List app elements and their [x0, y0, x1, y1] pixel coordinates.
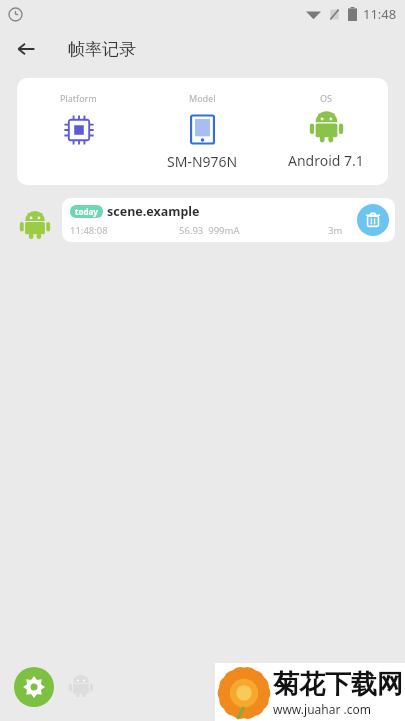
- button[interactable]: today: [62, 198, 395, 242]
- staticText: SM-N976N: [167, 152, 238, 171]
- staticText: today: [75, 206, 98, 217]
- button[interactable]: Delete: [357, 204, 389, 236]
- button[interactable]: Platform: [17, 78, 388, 185]
- staticText: 3m: [328, 224, 343, 237]
- staticText: 11:48: [363, 5, 397, 23]
- button[interactable]: Android app: [63, 669, 99, 705]
- staticText: 11:48:08: [70, 224, 108, 237]
- staticText: OS: [320, 92, 332, 104]
- staticText: Platform: [60, 92, 97, 104]
- staticText: Model: [189, 92, 216, 104]
- staticText: scene.example: [107, 203, 200, 220]
- staticText: 菊花下载网: [273, 668, 403, 701]
- button[interactable]: Back: [8, 31, 44, 67]
- button[interactable]: Settings: [14, 667, 54, 707]
- staticText: Android 7.1: [288, 151, 364, 170]
- staticText: www.juahar .com: [273, 701, 371, 717]
- staticText: 56.93 999mA: [179, 224, 240, 237]
- staticText: 帧率记录: [68, 39, 136, 60]
